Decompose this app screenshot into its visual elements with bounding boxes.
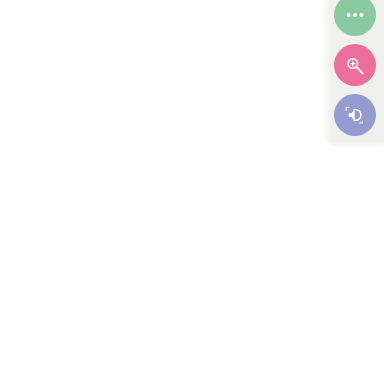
button[interactable]: Zoom in: [334, 44, 376, 86]
button[interactable]: More options: [334, 0, 376, 36]
button[interactable]: Volume: [334, 94, 376, 136]
